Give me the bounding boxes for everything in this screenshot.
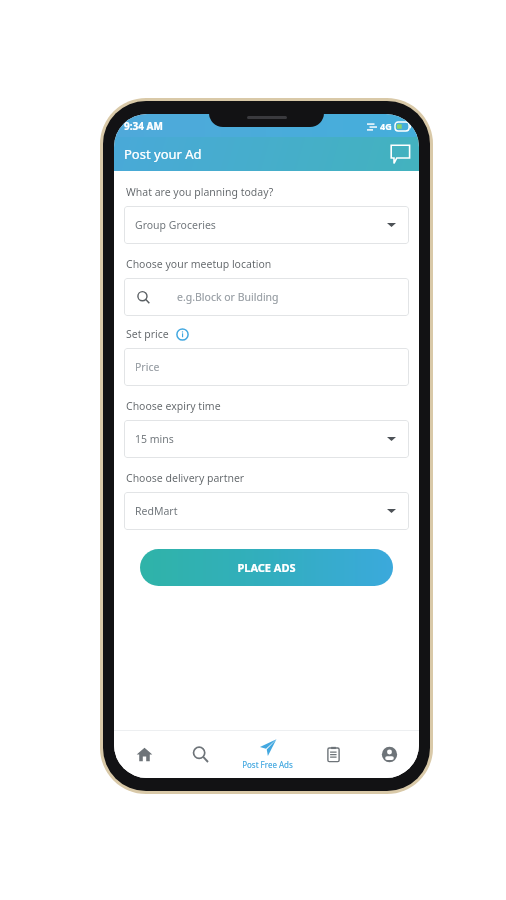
button[interactable]: 15 mins: [124, 420, 409, 458]
staticText: Set price: [126, 327, 169, 341]
button[interactable]: Search: [174, 730, 226, 778]
button[interactable]: e.g.Block or Building: [124, 278, 409, 316]
staticText: What are you planning today?: [126, 185, 274, 199]
staticText: PLACE ADS: [237, 560, 296, 575]
staticText: Choose your meetup location: [126, 257, 272, 271]
button[interactable]: PLACE ADS: [140, 549, 393, 586]
button[interactable]: RedMart: [124, 492, 409, 530]
button[interactable]: Profile: [363, 730, 415, 778]
button[interactable]: Price: [124, 348, 409, 386]
button[interactable]: My Ads: [307, 730, 359, 778]
staticText: RedMart: [135, 504, 178, 518]
staticText: Price: [135, 360, 160, 374]
button[interactable]: Post Free Ads: [231, 730, 303, 778]
button[interactable]: Messages: [385, 139, 415, 169]
staticText: 4G: [380, 120, 392, 132]
staticText: 15 mins: [135, 432, 174, 446]
button[interactable]: Home: [118, 730, 170, 778]
staticText: Choose expiry time: [126, 399, 221, 413]
staticText: Post Free Ads: [242, 759, 293, 770]
staticText: Group Groceries: [135, 218, 216, 232]
button[interactable]: Price info: [176, 328, 189, 341]
button[interactable]: Group Groceries: [124, 206, 409, 244]
staticText: Choose delivery partner: [126, 471, 245, 485]
staticText: Post your Ad: [124, 145, 202, 163]
staticText: e.g.Block or Building: [177, 290, 279, 304]
staticText: 9:34 AM: [124, 119, 163, 133]
